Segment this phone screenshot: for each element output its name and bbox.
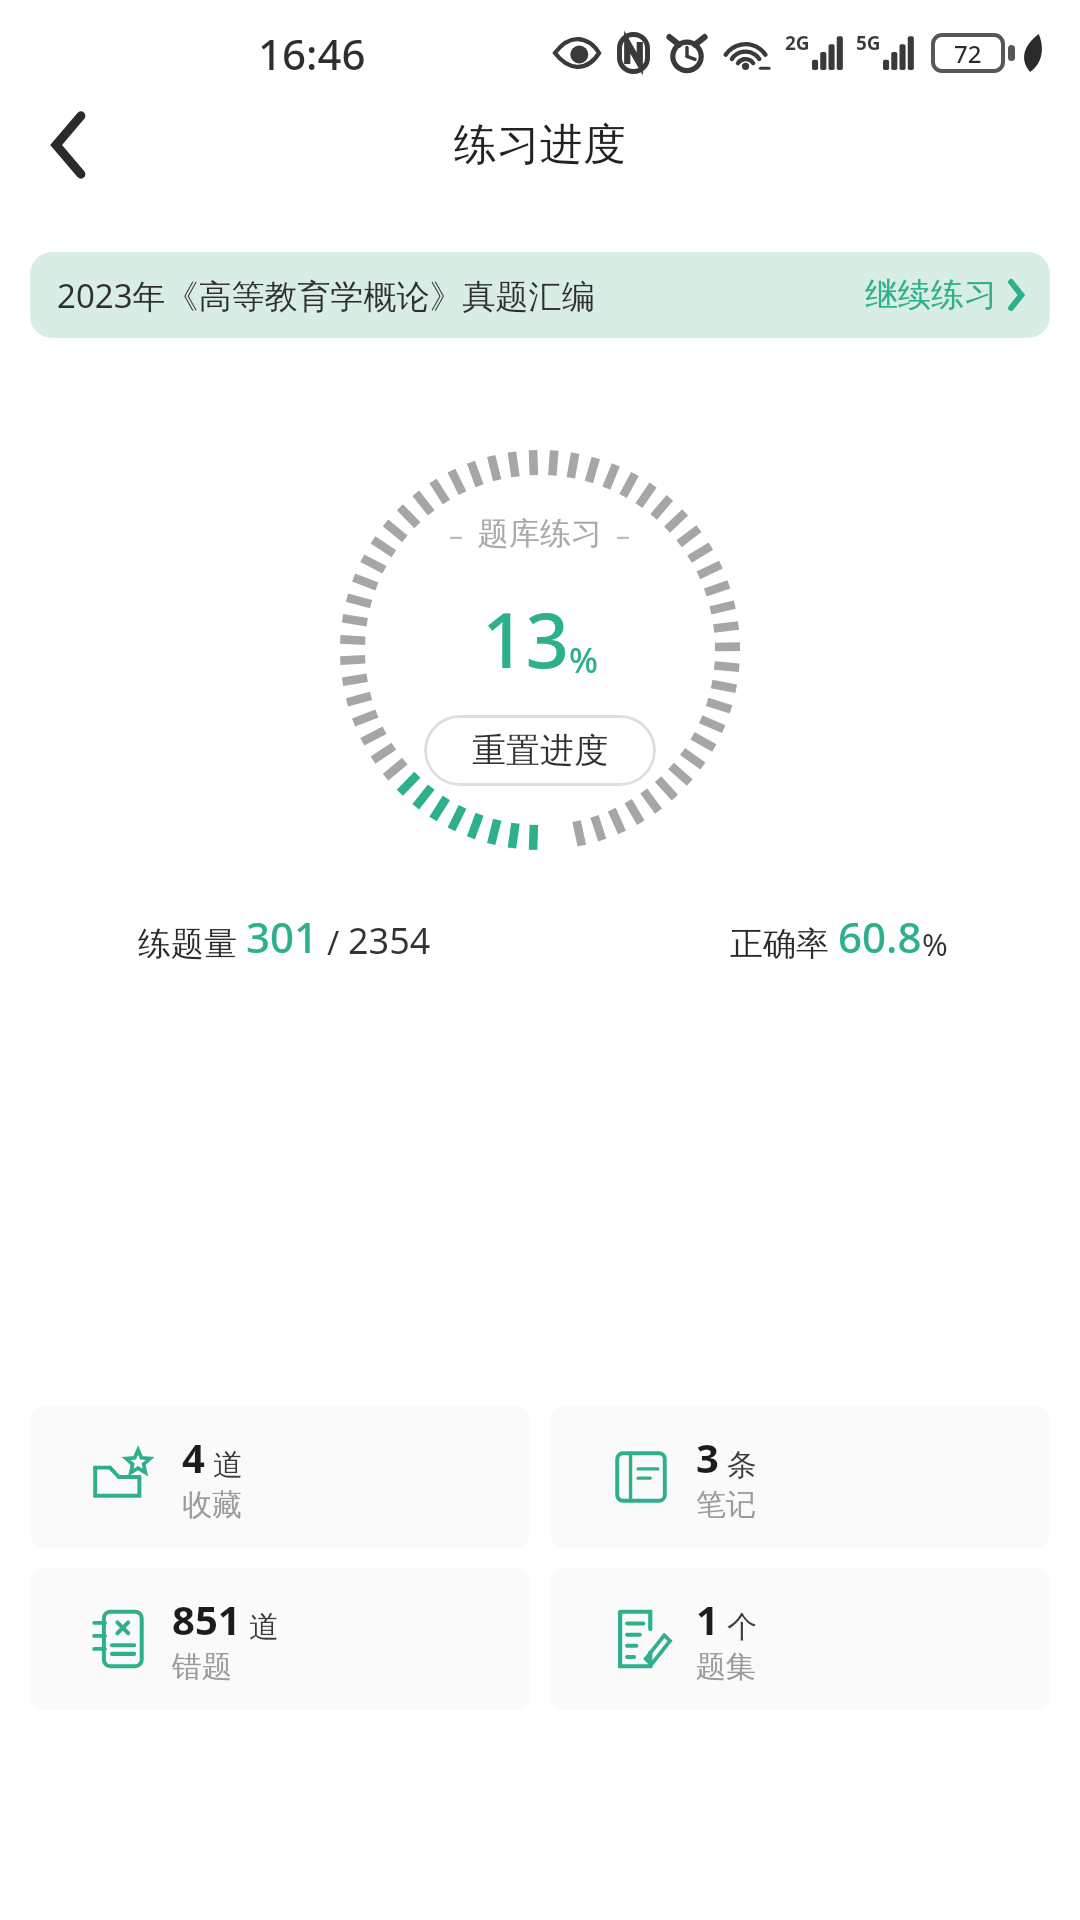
staticText: 16:46 <box>258 25 366 82</box>
staticText: – <box>449 515 464 553</box>
staticText: 错题 <box>172 1648 232 1686</box>
button[interactable]: Notes <box>550 1406 1050 1548</box>
staticText: 3 <box>696 1430 719 1484</box>
staticText: 正确率 <box>730 923 829 965</box>
staticText: 练习进度 <box>454 118 626 172</box>
staticText: 收藏 <box>182 1486 242 1524</box>
button[interactable]: Wrong questions <box>30 1568 530 1710</box>
staticText: 13 <box>482 587 569 691</box>
staticText: 笔记 <box>696 1486 756 1524</box>
staticText: 1 <box>696 1592 719 1646</box>
staticText: / <box>327 920 340 965</box>
staticText: 道 <box>249 1608 279 1646</box>
staticText: 练题量 <box>138 923 237 965</box>
button[interactable]: Favorites <box>30 1406 530 1548</box>
staticText: 道 <box>213 1446 243 1484</box>
staticText: 条 <box>727 1446 757 1484</box>
staticText: 题库练习 <box>478 514 602 553</box>
staticText: 301 <box>246 908 319 965</box>
staticText: 2354 <box>348 916 431 965</box>
staticText: 60.8 <box>838 908 922 965</box>
button[interactable]: 2023年《高等教育学概论》真题汇编 <box>30 252 1050 338</box>
button[interactable]: Question sets <box>550 1568 1050 1710</box>
staticText: 继续练习 <box>865 274 997 316</box>
other: Question sets <box>612 1608 670 1670</box>
staticText: % <box>922 923 948 965</box>
other: Wrong questions <box>92 1608 146 1670</box>
other: Favorites <box>92 1451 156 1503</box>
staticText: 2023年《高等教育学概论》真题汇编 <box>57 273 595 318</box>
other: Notes <box>612 1448 670 1506</box>
staticText: 重置进度 <box>472 729 608 772</box>
staticText: 2G <box>785 30 810 56</box>
staticText: 72 <box>954 37 982 70</box>
staticText: – <box>616 515 631 553</box>
staticText: 题集 <box>696 1648 756 1686</box>
staticText: 个 <box>727 1608 757 1646</box>
staticText: % <box>569 637 598 683</box>
staticText: 5G <box>856 30 881 56</box>
button[interactable]: 重置进度 <box>424 715 656 786</box>
staticText: 851 <box>172 1592 241 1646</box>
button[interactable]: Back <box>14 100 124 190</box>
staticText: 4 <box>182 1430 205 1484</box>
